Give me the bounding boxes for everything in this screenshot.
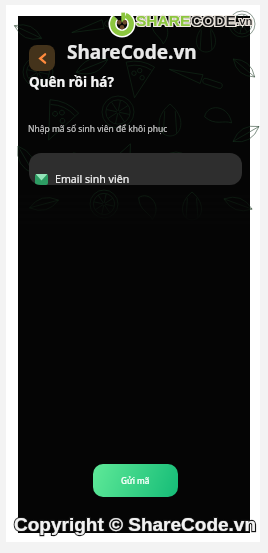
- staticText: Copyright © ShareCode.vn: [14, 514, 257, 535]
- button[interactable]: Email sinh viên: [29, 153, 242, 185]
- staticText: Gửi mã: [121, 475, 150, 486]
- staticText: .vn: [236, 15, 253, 28]
- staticText: .vn: [236, 15, 253, 28]
- staticText: Copyright © ShareCode.vn: [14, 514, 257, 535]
- staticText: ShareCode.vn: [67, 39, 197, 65]
- staticText: SHARE: [136, 12, 191, 29]
- staticText: Quên rồi há?: [29, 73, 114, 91]
- staticText: CODE: [191, 12, 236, 29]
- button[interactable]: Back: [29, 45, 55, 71]
- button[interactable]: Gửi mã: [93, 464, 178, 497]
- staticText: CODE: [191, 12, 236, 29]
- staticText: SHARE: [136, 12, 191, 29]
- staticText: Email sinh viên: [55, 172, 130, 185]
- staticText: Nhập mã số sinh viên để khôi phục: [28, 123, 168, 135]
